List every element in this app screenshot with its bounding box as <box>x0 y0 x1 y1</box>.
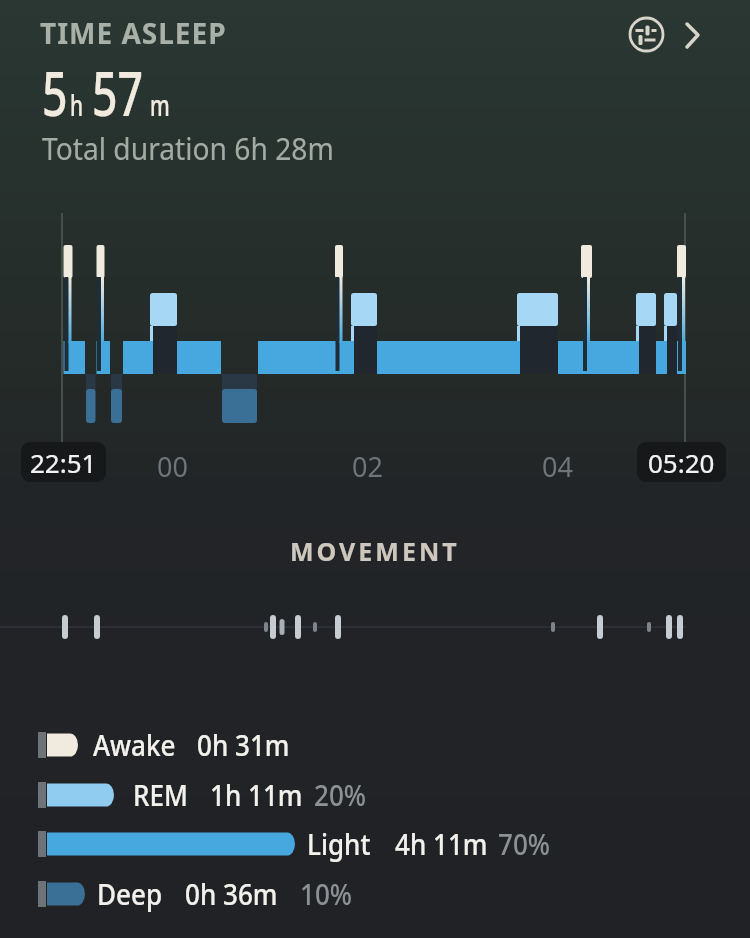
staticText: 1h 11m <box>210 776 303 814</box>
staticText: m <box>150 85 170 124</box>
staticText: 04 <box>542 448 573 485</box>
staticText: 70% <box>498 825 550 863</box>
staticText: TIME ASLEEP <box>40 14 227 52</box>
staticText: 4h 11m <box>395 825 488 863</box>
staticText: 10% <box>300 875 352 913</box>
staticText: 02 <box>352 448 383 485</box>
staticText: 57 <box>92 50 143 134</box>
staticText: h <box>70 85 84 124</box>
staticText: Total duration 6h 28m <box>42 128 334 169</box>
staticText: Awake <box>93 726 176 764</box>
button[interactable] <box>627 15 667 55</box>
staticText: Deep <box>97 875 162 913</box>
staticText: 0h 31m <box>197 726 290 764</box>
staticText: 5 <box>42 50 68 134</box>
button[interactable] <box>680 18 708 52</box>
staticText: 05:20 <box>648 445 715 480</box>
staticText: MOVEMENT <box>290 534 460 568</box>
staticText: REM <box>133 776 188 814</box>
staticText: 00 <box>157 448 188 485</box>
staticText: 20% <box>314 776 366 814</box>
staticText: 22:51 <box>30 445 97 480</box>
staticText: 0h 36m <box>185 875 278 913</box>
staticText: Light <box>307 825 371 863</box>
